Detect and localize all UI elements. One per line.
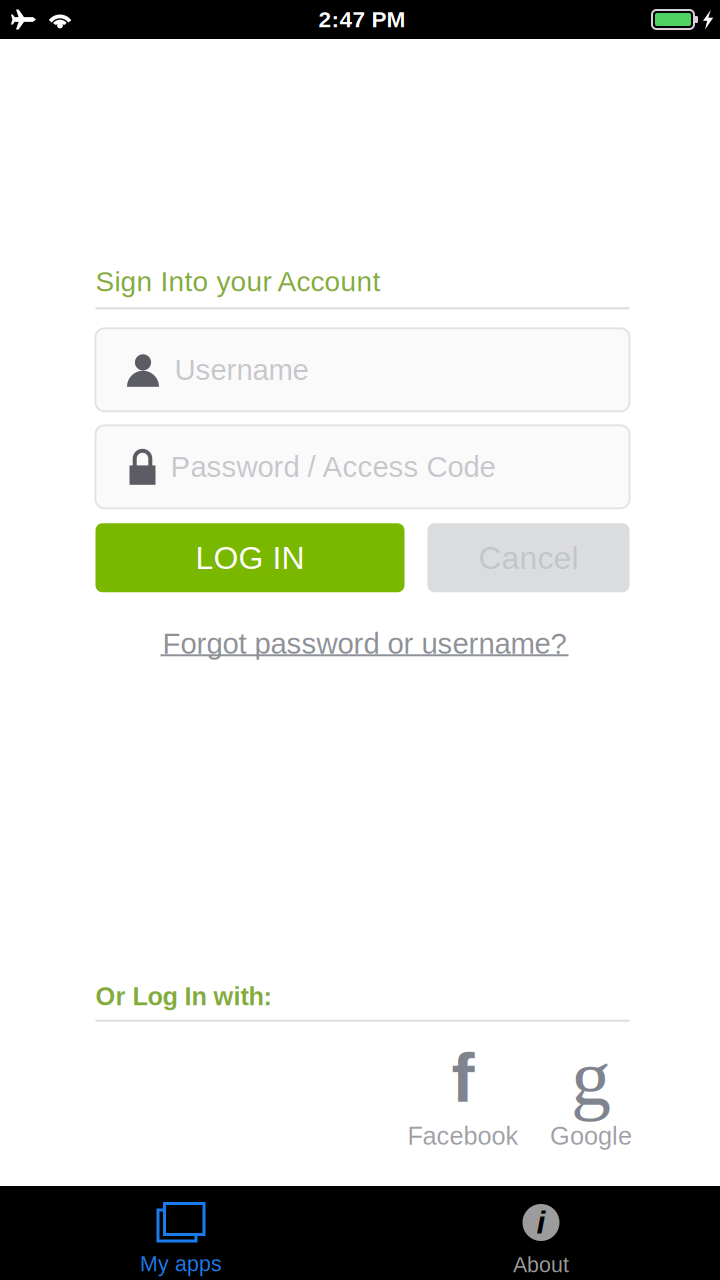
staticText: Facebook: [407, 1122, 518, 1150]
button[interactable]: f: [399, 1050, 527, 1150]
button[interactable]: g: [527, 1050, 655, 1150]
staticText: Password / Access Code: [170, 450, 495, 483]
staticText: g: [571, 1033, 611, 1122]
staticText: 2:47 PM: [318, 7, 405, 32]
staticText: f: [451, 1039, 474, 1116]
button[interactable]: i: [362, 1186, 720, 1280]
staticText: About: [513, 1253, 569, 1277]
button[interactable]: Forgot password or username?: [145, 627, 574, 661]
button[interactable]: Username: [90, 328, 629, 411]
staticText: My apps: [140, 1252, 222, 1276]
staticText: LOG IN: [195, 540, 304, 576]
button[interactable]: LOG IN: [95, 523, 404, 592]
staticText: Sign Into your Account: [95, 266, 380, 297]
staticText: Forgot password or username?: [162, 627, 566, 660]
staticText: Username: [174, 353, 308, 386]
button[interactable]: Password / Access Code: [90, 425, 629, 508]
button[interactable]: Cancel: [427, 523, 629, 592]
staticText: i: [536, 1205, 545, 1240]
staticText: Cancel: [478, 540, 578, 576]
button[interactable]: My apps: [0, 1186, 362, 1280]
staticText: Or Log In with:: [95, 982, 271, 1011]
staticText: Google: [550, 1122, 632, 1150]
